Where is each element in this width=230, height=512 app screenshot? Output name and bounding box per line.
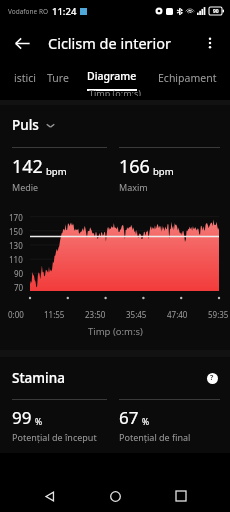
staticText: 170 (9, 212, 23, 223)
button[interactable]: Diagrame (80, 64, 144, 91)
staticText: Timp (o:m:s) (88, 325, 143, 338)
staticText: Maxim (119, 181, 148, 193)
staticText: 23:50 (85, 309, 106, 320)
button[interactable]: Home (98, 480, 132, 512)
staticText: bpm (153, 165, 174, 178)
staticText: 150 (9, 226, 23, 237)
staticText: bpm (46, 165, 67, 178)
staticText: 90 (14, 268, 24, 279)
staticText: istici (14, 71, 36, 85)
staticText: 110 (9, 254, 23, 265)
button[interactable]: Back (32, 480, 66, 512)
staticText: Potențial de început (12, 431, 97, 443)
button[interactable]: istici (0, 64, 36, 91)
staticText: 142 (12, 154, 43, 179)
staticText: 47:40 (167, 309, 188, 320)
button[interactable]: Recent apps (164, 480, 198, 512)
staticText: Potențial de final (119, 431, 191, 443)
staticText: ? (210, 373, 214, 383)
button[interactable]: Puls (12, 116, 55, 134)
staticText: Diagrame (87, 69, 137, 83)
staticText: 166 (119, 154, 150, 179)
staticText: Echipament (158, 71, 217, 85)
staticText: 0:00 (8, 309, 24, 320)
staticText: Ture (47, 71, 69, 85)
staticText: Vodafone RO (8, 7, 49, 16)
button[interactable]: Help (204, 370, 220, 386)
staticText: 99 (12, 406, 32, 429)
staticText: Ciclism de interior (48, 33, 172, 53)
button[interactable]: 99 (12, 399, 107, 443)
staticText: 11:24 (52, 5, 77, 18)
staticText: % (35, 416, 43, 428)
staticText: Medie (12, 181, 39, 193)
button[interactable]: 67 (119, 399, 220, 443)
staticText: Timp (o:m:s) (89, 87, 142, 96)
staticText: 70 (14, 282, 24, 293)
button[interactable]: Ture (36, 64, 80, 91)
staticText: 130 (9, 240, 23, 251)
staticText: % (142, 416, 150, 428)
button[interactable]: 142 (12, 147, 107, 193)
button[interactable]: Back (6, 27, 38, 59)
button[interactable]: 166 (119, 147, 220, 193)
staticText: 59:35 (208, 309, 229, 320)
staticText: 90 (213, 8, 219, 15)
staticText: Puls (12, 116, 39, 134)
button[interactable]: Echipament (144, 64, 230, 91)
staticText: 67 (119, 406, 139, 429)
staticText: Stamina (12, 369, 65, 387)
button[interactable]: More options (195, 28, 225, 58)
staticText: 35:45 (126, 309, 147, 320)
staticText: 11:55 (44, 309, 65, 320)
